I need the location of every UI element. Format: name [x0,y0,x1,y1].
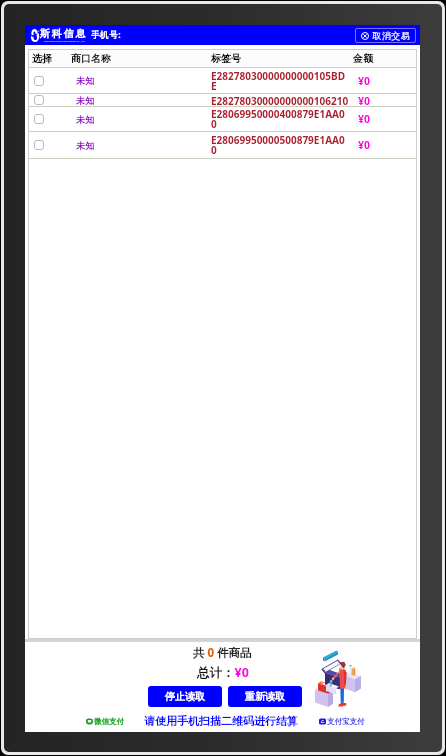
staticText: 未知 [76,140,96,151]
button[interactable]: 停止读取 [148,686,222,707]
button[interactable]: 支付宝支付 [319,717,365,726]
staticText: 商口名称 [71,52,111,65]
staticText: 重新读取 [245,690,285,703]
staticText: ¥0 [358,112,371,126]
staticText: E28069950000500879E1AA00 [211,133,349,157]
button[interactable]: 取消交易 [355,28,416,43]
staticText: 标签号 [211,52,241,65]
staticText: 请使用手机扫描二维码进行结算 [144,714,298,728]
button[interactable]: 微信支付 [86,717,124,726]
staticText: 停止读取 [165,690,205,703]
staticText: Sike information technology Co., Ltd [44,39,85,42]
staticText: 未知 [76,75,96,86]
staticText: 金额 [353,52,373,65]
button[interactable]: 未知 [28,132,417,159]
staticText: 未知 [76,114,96,125]
staticText: ¥0 [358,74,371,88]
staticText: 总计：¥0 [197,664,249,681]
staticText: E28278030000000000105BDE [211,69,349,93]
staticText: 支付宝支付 [327,717,365,726]
button[interactable]: 重新读取 [228,686,302,707]
staticText: 未知 [76,95,96,106]
staticText: ¥0 [358,138,371,152]
staticText: 选择 [32,52,52,65]
button[interactable]: 未知 [28,68,417,94]
button[interactable]: 未知 [28,94,417,107]
staticText: E28278030000000000106210 [211,94,349,106]
staticText: 斯科信息 [40,27,88,40]
staticText: 取消交易 [372,30,410,41]
staticText: 手机号: [91,29,122,41]
staticText: 共 0 件商品 [193,645,252,661]
staticText: 微信支付 [94,717,124,726]
staticText: E28069950000400879E1AA00 [211,107,349,131]
staticText: ¥0 [358,94,371,106]
button[interactable]: 未知 [28,107,417,132]
